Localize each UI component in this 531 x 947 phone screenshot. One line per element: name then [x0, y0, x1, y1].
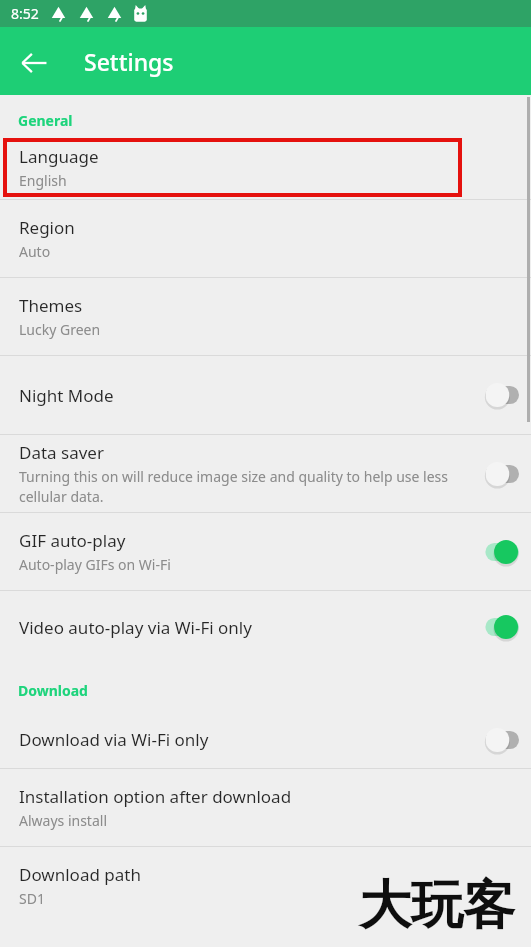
staticText: Region — [19, 216, 75, 239]
button[interactable]: GIF auto-play — [467, 531, 523, 573]
staticText: Data saver — [19, 441, 104, 464]
button[interactable]: GIF auto-play — [0, 513, 531, 590]
staticText: 8:52 — [11, 4, 39, 23]
button[interactable]: Video auto-play via Wi-Fi only — [0, 591, 531, 663]
button[interactable]: Back — [11, 40, 56, 85]
staticText: Download via Wi-Fi only — [19, 728, 209, 751]
staticText: Download path — [19, 863, 141, 886]
button[interactable]: Installation option after download — [0, 769, 531, 846]
button[interactable]: Language — [0, 139, 531, 199]
staticText: SD1 — [19, 889, 45, 908]
button[interactable]: Download via Wi-Fi only — [0, 711, 531, 768]
staticText: Download — [18, 681, 88, 700]
staticText: Turning this on will reduce image size a… — [19, 467, 463, 506]
staticText: Auto — [19, 242, 51, 261]
button[interactable]: Night Mode — [0, 356, 531, 434]
staticText: Video auto-play via Wi-Fi only — [19, 616, 252, 639]
button[interactable]: Download path — [0, 847, 531, 924]
staticText: Themes — [19, 294, 83, 317]
button[interactable]: Themes — [0, 278, 531, 355]
staticText: GIF auto-play — [19, 529, 126, 552]
staticText: General — [18, 111, 73, 130]
staticText: Always install — [19, 811, 108, 830]
button[interactable]: Download via Wi-Fi only — [467, 719, 523, 761]
staticText: Lucky Green — [19, 320, 101, 339]
staticText: English — [19, 171, 67, 190]
staticText: Installation option after download — [19, 785, 292, 808]
staticText: Auto-play GIFs on Wi-Fi — [19, 555, 171, 574]
staticText: Settings — [84, 46, 174, 77]
staticText: Night Mode — [19, 384, 114, 407]
button[interactable]: Data saver — [467, 453, 523, 495]
button[interactable]: Video auto-play via Wi-Fi only — [467, 606, 523, 648]
staticText: 大玩客 — [359, 873, 515, 939]
button[interactable]: Data saver — [0, 435, 531, 512]
staticText: Language — [19, 145, 99, 168]
button[interactable]: Region — [0, 200, 531, 277]
button[interactable]: Night Mode — [467, 374, 523, 416]
